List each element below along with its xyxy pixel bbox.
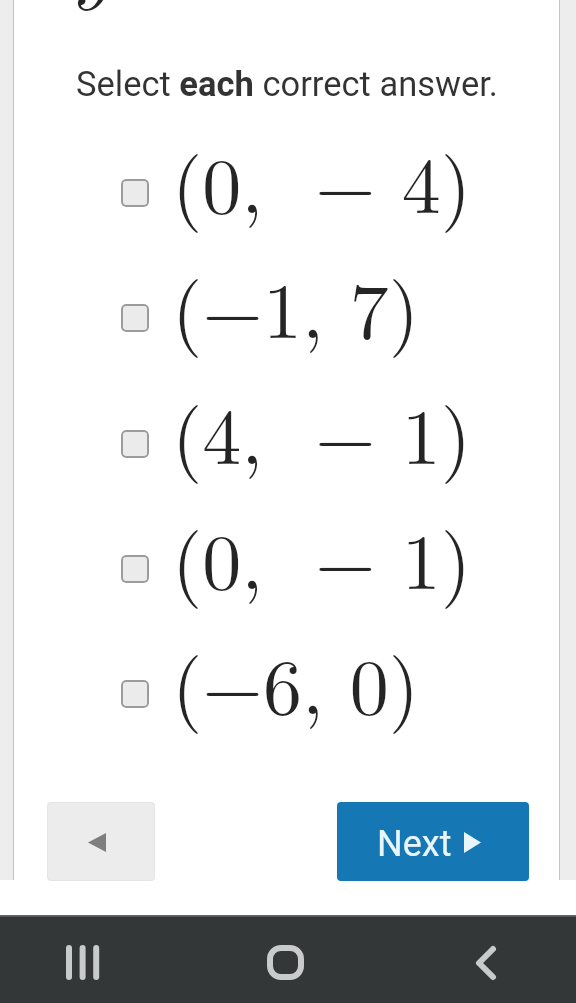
button[interactable]: Back xyxy=(384,915,576,1003)
staticText: (0, − 1) xyxy=(172,501,471,612)
button[interactable]: (0, − 4) xyxy=(14,131,560,255)
button[interactable]: (−6, 0) xyxy=(14,632,560,756)
button[interactable]: Recent apps xyxy=(0,915,192,1003)
button[interactable]: Previous xyxy=(47,802,155,881)
staticText: (4, − 1) xyxy=(172,376,471,487)
staticText: Next xyxy=(377,823,452,865)
button[interactable]: Home xyxy=(192,915,384,1003)
button[interactable]: (4, − 1) xyxy=(14,382,560,506)
staticText: y xyxy=(69,0,113,19)
staticText: (−6, 0) xyxy=(172,626,420,737)
button[interactable]: (−1, 7) xyxy=(14,256,560,380)
staticText: (−1, 7) xyxy=(172,250,420,361)
button[interactable]: (0, − 1) xyxy=(14,507,560,631)
staticText: (0, − 4) xyxy=(172,125,471,236)
button[interactable]: Next xyxy=(337,802,529,881)
staticText: Select each correct answer. xyxy=(76,64,498,104)
